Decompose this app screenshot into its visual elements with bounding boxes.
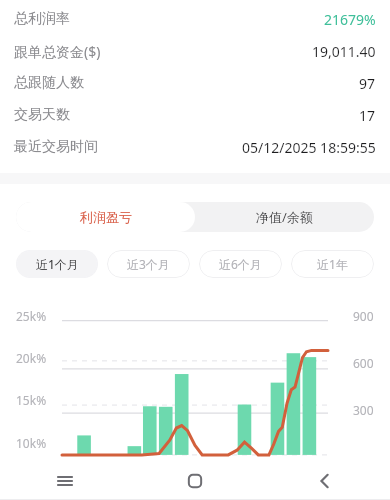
staticText: 跟单总资金($) — [14, 42, 101, 61]
button[interactable]: 近6个月 — [199, 250, 282, 278]
staticText: 近1个月 — [36, 256, 79, 272]
button[interactable]: 最近交易时间 — [0, 131, 390, 163]
staticText: 300 — [353, 402, 374, 418]
button[interactable]: 净值/余额 — [195, 202, 374, 232]
staticText: 净值/余额 — [256, 208, 313, 226]
button[interactable]: 近1个月 — [16, 250, 98, 278]
staticText: 近1年 — [317, 256, 348, 272]
staticText: 最近交易时间 — [14, 138, 98, 156]
staticText: 总跟随人数 — [14, 74, 84, 92]
button[interactable]: Home — [130, 462, 260, 500]
staticText: 近3个月 — [127, 256, 170, 272]
staticText: 25k% — [16, 308, 47, 324]
button[interactable]: 总利润率 — [0, 3, 390, 35]
staticText: 近6个月 — [219, 256, 262, 272]
staticText: 97 — [359, 74, 376, 93]
button[interactable]: 近1年 — [291, 250, 374, 278]
button[interactable]: 近3个月 — [107, 250, 190, 278]
staticText: 19,011.40 — [312, 42, 376, 61]
button[interactable]: Back — [260, 462, 390, 500]
button[interactable]: 跟单总资金($) — [0, 35, 390, 67]
staticText: 交易天数 — [14, 106, 70, 124]
staticText: 15k% — [16, 392, 47, 408]
staticText: 900 — [353, 308, 374, 324]
staticText: 600 — [353, 355, 374, 371]
staticText: 05/12/2025 18:59:55 — [242, 138, 376, 157]
staticText: 17 — [359, 106, 376, 125]
staticText: 总利润率 — [14, 10, 70, 28]
button[interactable]: 交易天数 — [0, 99, 390, 131]
button[interactable]: Recent apps — [0, 462, 130, 500]
staticText: 10k% — [16, 435, 47, 451]
staticText: 21679% — [324, 10, 376, 29]
button[interactable]: 总跟随人数 — [0, 67, 390, 99]
staticText: 利润盈亏 — [80, 209, 132, 225]
staticText: 20k% — [16, 350, 47, 366]
button[interactable]: 利润盈亏 — [16, 202, 195, 232]
